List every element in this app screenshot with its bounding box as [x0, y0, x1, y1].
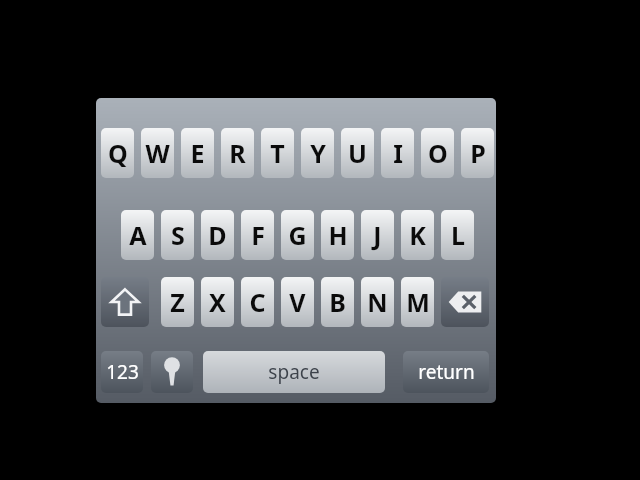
- staticText: X: [209, 285, 226, 319]
- staticText: H: [328, 218, 348, 252]
- staticText: 123: [106, 359, 139, 385]
- staticText: I: [393, 136, 403, 170]
- button[interactable]: T: [261, 128, 294, 178]
- button[interactable]: J: [361, 210, 394, 260]
- button[interactable]: E: [181, 128, 214, 178]
- staticText: Y: [310, 136, 326, 170]
- button[interactable]: space: [203, 351, 385, 393]
- staticText: R: [229, 136, 246, 170]
- staticText: S: [171, 218, 185, 252]
- staticText: P: [470, 136, 486, 170]
- button[interactable]: V: [281, 277, 314, 327]
- button[interactable]: A: [121, 210, 154, 260]
- staticText: L: [451, 218, 465, 252]
- staticText: E: [190, 136, 205, 170]
- button[interactable]: O: [421, 128, 454, 178]
- button[interactable]: N: [361, 277, 394, 327]
- staticText: D: [208, 218, 227, 252]
- staticText: Q: [108, 136, 128, 170]
- staticText: space: [268, 359, 320, 385]
- button[interactable]: H: [321, 210, 354, 260]
- button[interactable]: P: [461, 128, 494, 178]
- button[interactable]: 123: [101, 351, 143, 393]
- staticText: G: [288, 218, 307, 252]
- staticText: T: [270, 136, 285, 170]
- staticText: F: [251, 218, 265, 252]
- button[interactable]: K: [401, 210, 434, 260]
- staticText: V: [289, 285, 306, 319]
- button[interactable]: Z: [161, 277, 194, 327]
- button[interactable]: W: [141, 128, 174, 178]
- button[interactable]: D: [201, 210, 234, 260]
- button[interactable]: B: [321, 277, 354, 327]
- staticText: return: [418, 359, 475, 385]
- button[interactable]: C: [241, 277, 274, 327]
- staticText: B: [329, 285, 346, 319]
- button[interactable]: I: [381, 128, 414, 178]
- staticText: W: [145, 136, 170, 170]
- staticText: U: [348, 136, 367, 170]
- staticText: O: [428, 136, 448, 170]
- button[interactable]: R: [221, 128, 254, 178]
- button[interactable]: Shift: [101, 277, 149, 327]
- button[interactable]: Y: [301, 128, 334, 178]
- button[interactable]: S: [161, 210, 194, 260]
- button[interactable]: Q: [101, 128, 134, 178]
- button[interactable]: U: [341, 128, 374, 178]
- staticText: Z: [170, 285, 185, 319]
- button[interactable]: M: [401, 277, 434, 327]
- button[interactable]: Backspace: [441, 277, 489, 327]
- staticText: M: [406, 285, 430, 319]
- button[interactable]: Dictation: [151, 351, 193, 393]
- button[interactable]: return: [403, 351, 489, 393]
- button[interactable]: X: [201, 277, 234, 327]
- staticText: A: [129, 218, 147, 252]
- button[interactable]: G: [281, 210, 314, 260]
- button[interactable]: F: [241, 210, 274, 260]
- staticText: J: [373, 218, 382, 252]
- staticText: N: [367, 285, 388, 319]
- staticText: C: [249, 285, 266, 319]
- staticText: K: [409, 218, 426, 252]
- button[interactable]: L: [441, 210, 474, 260]
